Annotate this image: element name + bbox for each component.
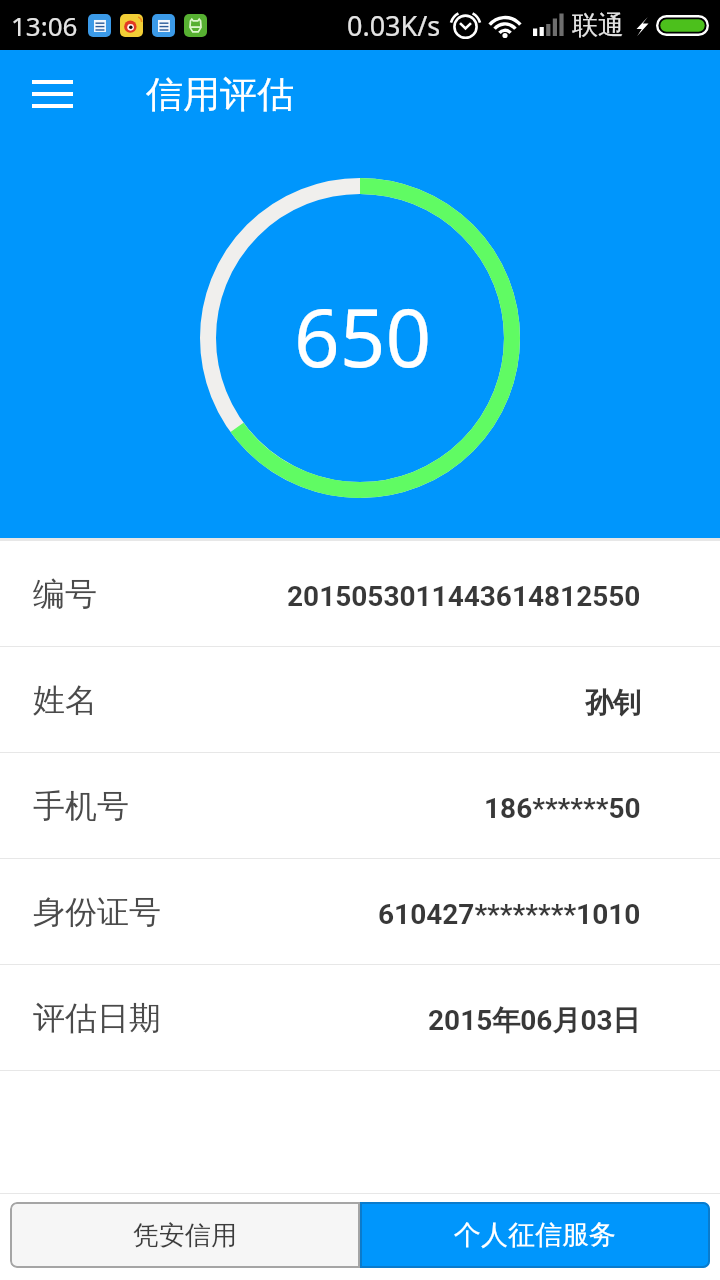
staticText: 身份证号 — [33, 892, 161, 932]
button[interactable]: 个人征信服务 — [360, 1202, 710, 1268]
button[interactable]: Open navigation menu — [20, 62, 84, 126]
staticText: 孙钊 — [585, 685, 641, 720]
button[interactable]: 身份证号 — [0, 859, 720, 964]
staticText: 凭安信用 — [133, 1219, 237, 1252]
staticText: 186******50 — [484, 792, 641, 825]
button[interactable]: 凭安信用 — [10, 1202, 360, 1268]
staticText: 2015053011443614812550 — [287, 580, 641, 613]
staticText: 姓名 — [33, 680, 97, 720]
button[interactable]: 编号 — [0, 541, 720, 646]
button[interactable]: 姓名 — [0, 647, 720, 752]
staticText: 650 — [294, 281, 432, 390]
staticText: 个人征信服务 — [454, 1218, 616, 1252]
staticText: 评估日期 — [33, 998, 161, 1038]
staticText: 2015年06月03日 — [428, 1003, 641, 1038]
staticText: 13:06 — [11, 8, 78, 43]
staticText: 610427********1010 — [378, 898, 641, 931]
staticText: 0.03K/s — [347, 7, 441, 44]
staticText: 编号 — [33, 574, 97, 614]
button[interactable]: 评估日期 — [0, 965, 720, 1070]
staticText: 手机号 — [33, 786, 129, 826]
staticText: 信用评估 — [146, 71, 294, 118]
staticText: 联通 — [572, 9, 624, 42]
button[interactable]: 手机号 — [0, 753, 720, 858]
